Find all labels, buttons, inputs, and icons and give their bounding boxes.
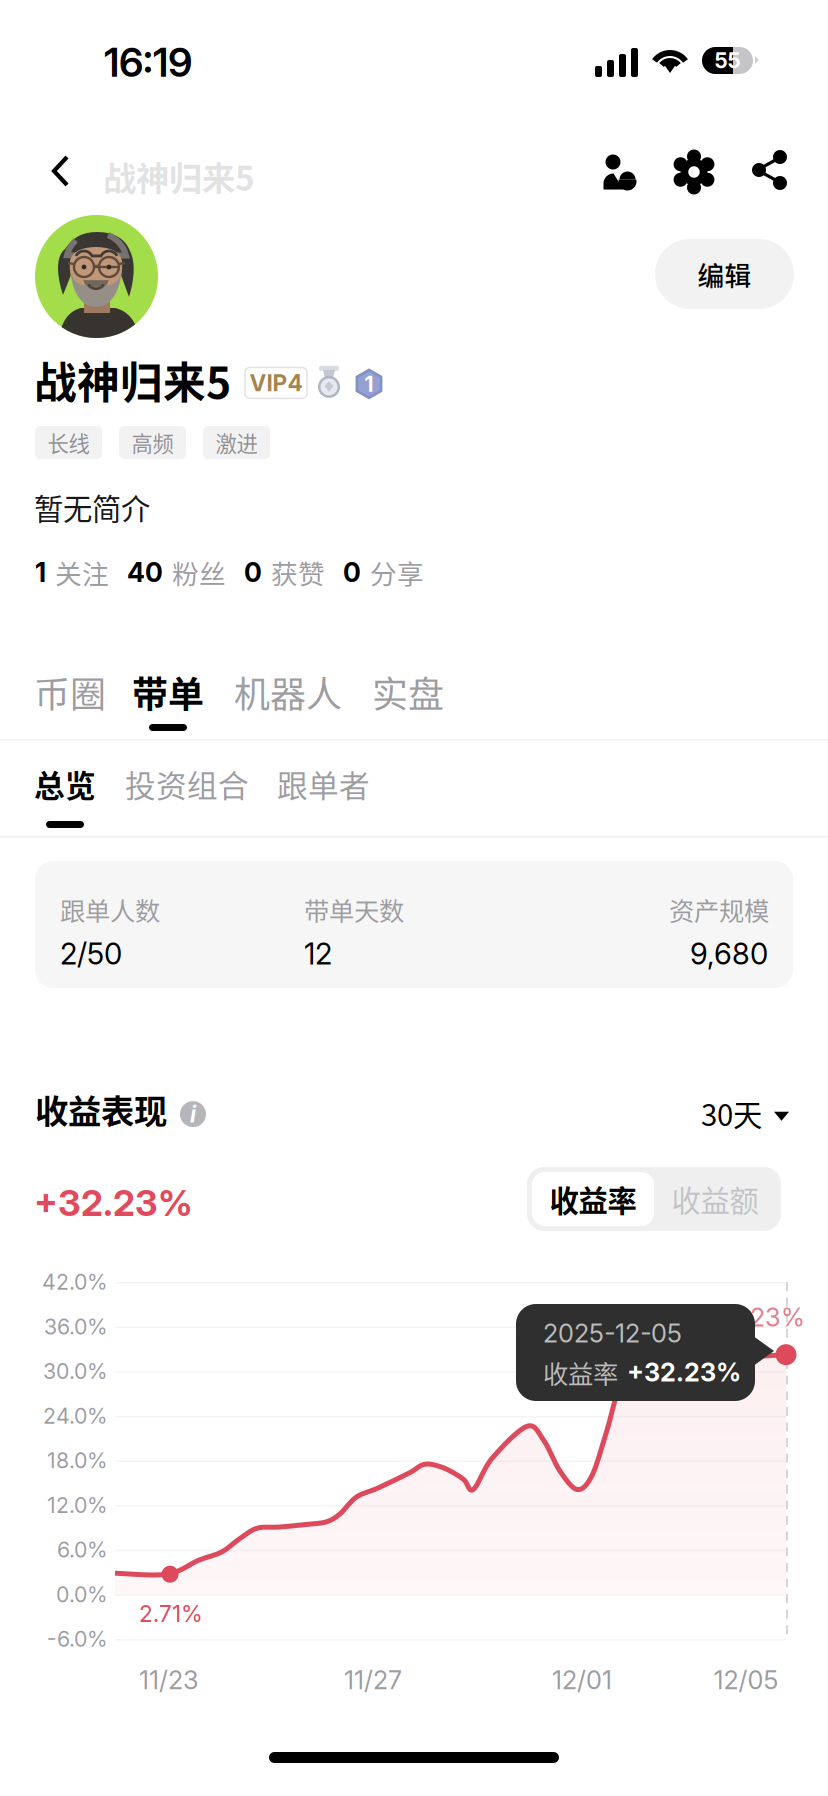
button[interactable]: 0 bbox=[244, 553, 325, 592]
staticText: 36.0% bbox=[44, 1314, 108, 1339]
staticText: 2025-12-05 bbox=[543, 1318, 682, 1349]
staticText: 30天 bbox=[701, 1092, 762, 1134]
button[interactable]: Share bbox=[746, 146, 794, 194]
staticText: 2.71% bbox=[139, 1600, 203, 1627]
staticText: 12 bbox=[304, 936, 332, 971]
staticText: 带单天数 bbox=[304, 891, 404, 928]
staticText: 40 bbox=[127, 556, 163, 588]
staticText: 总览 bbox=[34, 762, 96, 806]
staticText: 跟单人数 bbox=[60, 891, 160, 928]
staticText: 收益额 bbox=[671, 1178, 758, 1220]
staticText: 长线 bbox=[47, 427, 89, 458]
staticText: 带单 bbox=[132, 666, 204, 718]
button[interactable]: 跟单者 bbox=[277, 761, 370, 807]
button[interactable]: Back bbox=[25, 135, 97, 207]
button[interactable]: 40 bbox=[127, 553, 226, 592]
button[interactable]: 收益额 bbox=[654, 1172, 776, 1226]
staticText: 11/23 bbox=[139, 1665, 199, 1695]
staticText: 获赞 bbox=[271, 553, 325, 592]
staticText: +32.23% bbox=[627, 1357, 741, 1388]
staticText: 战神归来5 bbox=[34, 349, 231, 411]
button[interactable]: 30天 bbox=[701, 1092, 789, 1134]
staticText: 收益率 bbox=[543, 1354, 618, 1391]
staticText: 16:19 bbox=[104, 38, 192, 86]
staticText: 2/50 bbox=[60, 936, 122, 971]
staticText: 投资组合 bbox=[125, 762, 249, 806]
button[interactable]: 投资组合 bbox=[125, 761, 249, 807]
button[interactable]: 总览 bbox=[34, 761, 96, 828]
staticText: 收益率 bbox=[549, 1178, 636, 1220]
staticText: 12.0% bbox=[47, 1492, 108, 1518]
staticText: 关注 bbox=[55, 553, 109, 592]
button[interactable]: 带单 bbox=[132, 666, 204, 731]
staticText: 30.0% bbox=[43, 1358, 108, 1384]
button[interactable]: 实盘 bbox=[372, 666, 444, 718]
staticText: 24.0% bbox=[43, 1403, 108, 1429]
staticText: 6.0% bbox=[57, 1537, 108, 1563]
button[interactable]: Settings bbox=[670, 148, 718, 196]
button[interactable]: 币圈 bbox=[34, 666, 106, 718]
staticText: +32.23% bbox=[34, 1181, 193, 1225]
staticText: 暂无简介 bbox=[34, 486, 150, 528]
staticText: 激进 bbox=[215, 427, 257, 458]
staticText: 1 bbox=[35, 556, 46, 588]
staticText: 9,680 bbox=[690, 936, 768, 971]
staticText: 高频 bbox=[131, 427, 173, 458]
staticText: 12/05 bbox=[713, 1665, 778, 1695]
staticText: 粉丝 bbox=[172, 553, 226, 592]
button[interactable]: 机器人 bbox=[234, 666, 342, 718]
staticText: 分享 bbox=[370, 553, 424, 592]
staticText: 12/01 bbox=[552, 1665, 612, 1695]
staticText: 机器人 bbox=[234, 666, 342, 718]
button[interactable]: 收益率 bbox=[532, 1172, 654, 1226]
staticText: 收益表现 bbox=[35, 1085, 167, 1133]
staticText: 0 bbox=[343, 556, 361, 588]
staticText: 18.0% bbox=[47, 1448, 108, 1473]
staticText: 55 bbox=[714, 48, 740, 73]
button[interactable]: Friends bbox=[594, 148, 646, 196]
staticText: 资产规模 bbox=[669, 891, 769, 928]
staticText: VIP4 bbox=[249, 369, 302, 397]
button[interactable]: 0 bbox=[343, 553, 424, 592]
staticText: 跟单者 bbox=[277, 762, 370, 806]
staticText: 0 bbox=[244, 556, 262, 588]
staticText: 1 bbox=[364, 371, 373, 397]
button[interactable]: 1 bbox=[35, 553, 109, 592]
button[interactable]: 编辑 bbox=[655, 239, 794, 309]
staticText: i bbox=[190, 1100, 196, 1128]
staticText: -6.0% bbox=[47, 1626, 108, 1652]
staticText: 编辑 bbox=[697, 255, 751, 293]
staticText: 32.23% bbox=[712, 1302, 805, 1333]
staticText: 11/27 bbox=[344, 1665, 402, 1695]
staticText: 实盘 bbox=[372, 666, 444, 718]
staticText: 战神归来5 bbox=[103, 152, 255, 200]
staticText: 42.0% bbox=[42, 1269, 108, 1295]
staticText: 0.0% bbox=[56, 1581, 108, 1607]
staticText: 币圈 bbox=[34, 666, 106, 718]
